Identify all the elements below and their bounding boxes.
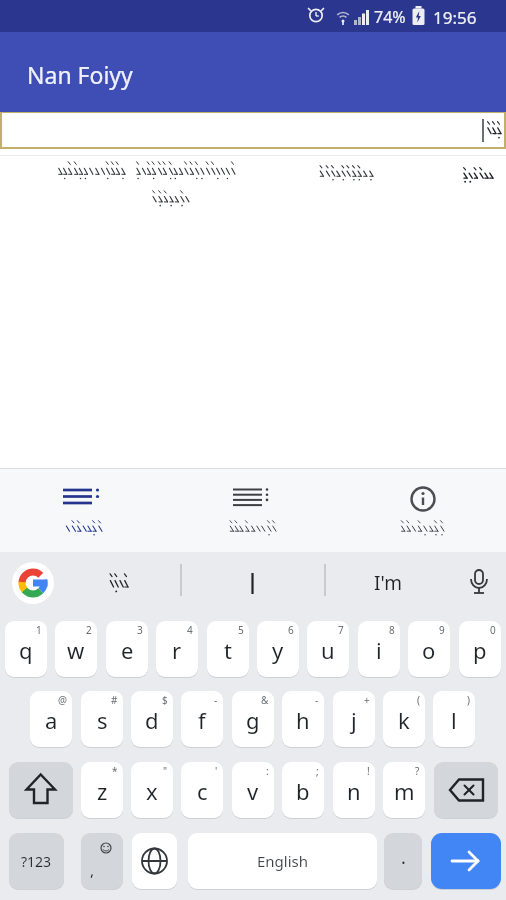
staticText: :: [266, 764, 269, 778]
button[interactable]: I'm: [340, 560, 435, 606]
staticText: 0: [490, 623, 496, 637]
staticText: -: [315, 693, 319, 707]
staticText: d: [145, 705, 159, 735]
staticText: k: [398, 705, 410, 735]
staticText: 4: [187, 623, 193, 637]
staticText: p: [473, 635, 487, 665]
staticText: 74%: [374, 6, 406, 28]
staticText: i: [376, 635, 382, 665]
button[interactable]: h: [282, 691, 324, 747]
button[interactable]: u: [307, 621, 349, 677]
staticText: q: [19, 635, 33, 665]
button[interactable]: f: [181, 691, 223, 747]
button[interactable]: [132, 833, 177, 889]
button[interactable]: e: [106, 621, 148, 677]
button[interactable]: [24, 470, 144, 550]
staticText: 5: [238, 623, 244, 637]
staticText: 2: [86, 623, 92, 637]
staticText: *: [112, 764, 118, 778]
staticText: 3: [137, 623, 143, 637]
staticText: x: [146, 776, 158, 806]
button[interactable]: i: [358, 621, 400, 677]
staticText: w: [67, 635, 85, 665]
staticText: r: [172, 635, 182, 665]
staticText: m: [394, 776, 415, 806]
staticText: ?: [415, 764, 420, 778]
button[interactable]: k: [383, 691, 425, 747]
staticText: English: [257, 851, 309, 871]
button[interactable]: [2, 113, 504, 147]
staticText: g: [246, 705, 260, 735]
button[interactable]: l: [433, 691, 475, 747]
staticText: 9: [439, 623, 445, 637]
staticText: h: [296, 705, 310, 735]
staticText: c: [197, 776, 208, 806]
button[interactable]: m: [383, 762, 425, 818]
button[interactable]: o: [408, 621, 450, 677]
button[interactable]: [80, 560, 155, 606]
button[interactable]: a: [30, 691, 72, 747]
button[interactable]: p: [459, 621, 501, 677]
staticText: Nan Foiyy: [27, 59, 133, 90]
button[interactable]: r: [156, 621, 198, 677]
staticText: @: [58, 693, 67, 707]
staticText: t: [224, 635, 232, 665]
staticText: 6: [288, 623, 294, 637]
button[interactable]: ?123: [9, 833, 64, 889]
staticText: !: [367, 764, 370, 778]
staticText: 8: [389, 623, 395, 637]
staticText: z: [97, 776, 108, 806]
button[interactable]: w: [55, 621, 97, 677]
staticText: &: [261, 693, 269, 707]
staticText: ): [467, 693, 470, 707]
button[interactable]: [9, 762, 73, 818]
button[interactable]: ,: [81, 833, 123, 889]
staticText: s: [97, 705, 108, 735]
button[interactable]: q: [5, 621, 47, 677]
staticText: j: [351, 705, 357, 735]
button[interactable]: [458, 560, 500, 606]
button[interactable]: z: [81, 762, 123, 818]
button[interactable]: x: [131, 762, 173, 818]
staticText: I'm: [374, 570, 402, 596]
staticText: y: [272, 635, 284, 665]
staticText: ?123: [21, 852, 52, 871]
staticText: .: [401, 845, 406, 870]
staticText: #: [111, 693, 118, 707]
staticText: ;: [316, 764, 319, 778]
staticText: a: [45, 705, 58, 735]
staticText: b: [296, 776, 310, 806]
button[interactable]: t: [207, 621, 249, 677]
button[interactable]: j: [333, 691, 375, 747]
staticText: l: [451, 705, 457, 735]
button[interactable]: n: [333, 762, 375, 818]
button[interactable]: [362, 470, 482, 550]
staticText: 19:56: [433, 6, 477, 29]
staticText: $: [162, 693, 168, 707]
button[interactable]: English: [188, 833, 377, 889]
button[interactable]: s: [81, 691, 123, 747]
button[interactable]: [431, 833, 501, 889]
button[interactable]: g: [232, 691, 274, 747]
button[interactable]: [12, 562, 54, 604]
button[interactable]: [434, 762, 498, 818]
staticText: ': [215, 764, 218, 778]
staticText: ,: [90, 860, 95, 880]
staticText: v: [247, 776, 259, 806]
button[interactable]: d: [131, 691, 173, 747]
staticText: e: [121, 635, 134, 665]
button[interactable]: y: [257, 621, 299, 677]
button[interactable]: v: [232, 762, 274, 818]
button[interactable]: b: [282, 762, 324, 818]
staticText: +: [364, 693, 370, 707]
staticText: 1: [36, 623, 42, 637]
staticText: -: [214, 693, 218, 707]
staticText: (: [417, 693, 420, 707]
button[interactable]: [193, 470, 313, 550]
staticText: o: [422, 635, 436, 665]
button[interactable]: c: [181, 762, 223, 818]
staticText: f: [198, 705, 206, 735]
button[interactable]: [205, 560, 300, 606]
staticText: n: [347, 776, 361, 806]
button[interactable]: .: [384, 833, 422, 889]
